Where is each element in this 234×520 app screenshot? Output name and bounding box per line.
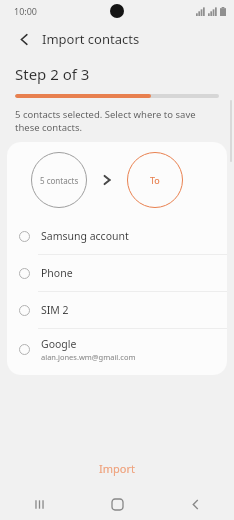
button[interactable]: Home xyxy=(78,488,156,520)
staticText: 5 contacts xyxy=(40,175,79,186)
button[interactable]: To xyxy=(127,152,183,208)
staticText: 5 contacts selected. Select where to sav… xyxy=(15,108,212,134)
staticText: Google xyxy=(41,337,77,351)
button[interactable]: Recent apps xyxy=(0,488,78,520)
staticText: To xyxy=(150,174,160,186)
button[interactable]: Samsung account xyxy=(7,218,227,255)
staticText: Import xyxy=(99,461,135,476)
staticText: 10:00 xyxy=(14,5,38,17)
staticText: Samsung account xyxy=(41,229,129,243)
button[interactable]: Import xyxy=(0,448,234,488)
button[interactable]: 5 contacts xyxy=(31,152,87,208)
staticText: Step 2 of 3 xyxy=(15,64,90,84)
button[interactable]: Google xyxy=(7,329,227,369)
button[interactable]: Phone xyxy=(7,255,227,292)
button[interactable]: SIM 2 xyxy=(7,292,227,329)
staticText: alan.jones.wm@gmail.com xyxy=(41,352,136,362)
button[interactable]: Back xyxy=(156,488,234,520)
staticText: SIM 2 xyxy=(41,303,69,317)
button[interactable]: Back xyxy=(12,27,36,51)
staticText: Import contacts xyxy=(42,30,140,48)
staticText: Phone xyxy=(41,266,73,280)
